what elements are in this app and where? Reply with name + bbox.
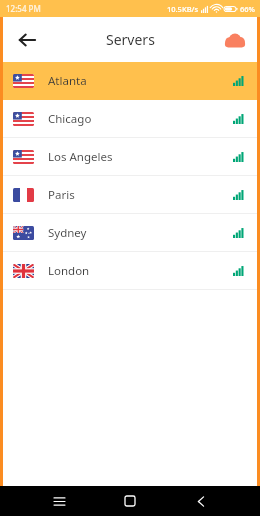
other: Signal strength [227,260,249,282]
staticText: London [48,263,90,279]
button[interactable]: Back [11,24,43,56]
staticText: Atlanta [48,73,87,89]
staticText: 12:54 PM [6,3,41,14]
button[interactable]: Atlanta [3,62,257,100]
staticText: Los Angeles [48,149,113,165]
other: Signal strength [227,184,249,206]
button[interactable]: Los Angeles [3,138,257,176]
other: Signal strength [227,146,249,168]
staticText: Servers [106,30,155,49]
button[interactable]: Recent apps [46,488,72,514]
staticText: Sydney [48,225,87,241]
button[interactable]: Paris [3,176,257,214]
staticText: Chicago [48,111,92,127]
other: Signal strength [227,70,249,92]
staticText: 66% [240,4,255,14]
other: Signal strength [227,108,249,130]
button[interactable]: Chicago [3,100,257,138]
button[interactable]: Back [188,488,214,514]
staticText: 10.5KB/s [167,4,199,14]
other: Signal strength [227,222,249,244]
button[interactable]: Cloud [219,24,251,56]
button[interactable]: London [3,252,257,290]
button[interactable]: Sydney [3,214,257,252]
button[interactable]: Home [117,488,143,514]
staticText: Paris [48,187,75,203]
